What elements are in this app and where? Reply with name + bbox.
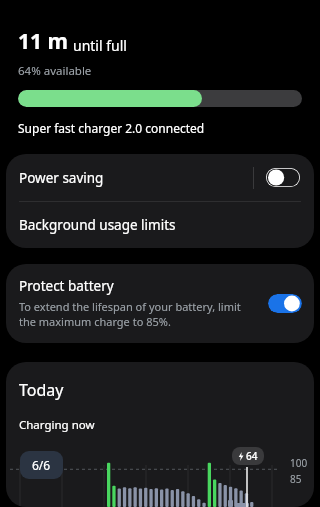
button[interactable]: Protect battery <box>6 264 314 343</box>
staticText: Charging now <box>19 417 95 433</box>
staticText: 64 <box>246 449 258 463</box>
staticText: Today <box>19 379 64 401</box>
staticText: Background usage limits <box>19 216 176 234</box>
staticText: 100 <box>290 456 308 470</box>
staticText: To extend the lifespan of your battery, … <box>19 299 260 329</box>
staticText: 85 <box>290 472 302 486</box>
staticText: Power saving <box>19 169 104 187</box>
button[interactable]: Power saving, off <box>266 168 300 187</box>
button[interactable]: Power saving <box>6 154 314 201</box>
staticText: until full <box>73 36 127 55</box>
staticText: 6/6 <box>32 457 51 473</box>
button[interactable]: Protect battery, on <box>268 294 302 313</box>
staticText: 64% available <box>18 63 92 79</box>
staticText: 11 m <box>18 27 68 56</box>
staticText: Super fast charger 2.0 connected <box>18 120 205 136</box>
button[interactable]: Background usage limits <box>6 202 314 248</box>
button[interactable]: 6/6 <box>20 451 63 479</box>
staticText: Protect battery <box>19 277 114 295</box>
